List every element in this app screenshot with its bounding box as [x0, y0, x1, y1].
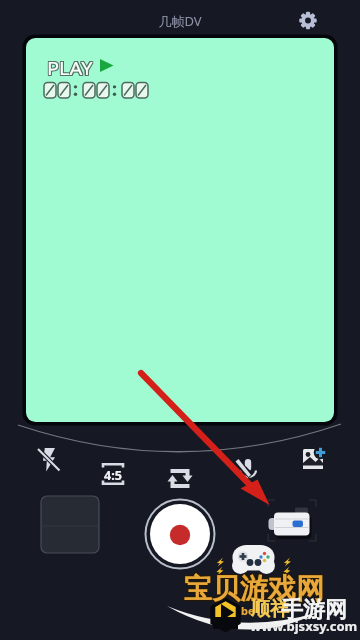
button[interactable]: Add image [295, 441, 331, 477]
staticText: PLAY [47, 54, 93, 79]
button[interactable]: Settings [292, 5, 324, 37]
staticText: 手游网 [281, 596, 347, 624]
button[interactable]: Switch camera [266, 502, 316, 540]
staticText: PLAY [46, 54, 92, 79]
staticText: PLAY [46, 56, 92, 81]
staticText: 4:5 [104, 467, 122, 481]
staticText: 宝贝游戏网 [183, 572, 323, 607]
staticText: 宝贝游戏网 [183, 571, 323, 606]
button[interactable]: Aspect ratio 4:5 [95, 456, 131, 492]
staticText: PLAY [48, 56, 94, 81]
button[interactable]: Gallery [41, 496, 99, 553]
staticText: PLAY [47, 55, 93, 80]
staticText: 宝贝游戏网 [184, 571, 324, 606]
staticText: be [241, 603, 255, 618]
staticText: 宝贝游戏网 [185, 572, 325, 607]
staticText: PLAY [48, 54, 94, 79]
staticText: 顺祥 [251, 597, 289, 621]
staticText: www.bjsxsy.com [250, 617, 358, 635]
button[interactable]: Microphone off [230, 451, 266, 487]
staticText: 宝贝游戏网 [184, 570, 324, 605]
staticText: 宝贝游戏网 [185, 570, 325, 605]
staticText: PLAY [48, 55, 94, 80]
staticText: 宝贝游戏网 [183, 570, 323, 605]
button[interactable]: Flash off [30, 443, 66, 479]
staticText: 几帧DV [158, 12, 202, 30]
staticText: PLAY [47, 56, 93, 81]
button[interactable]: Record [144, 498, 216, 570]
staticText: PLAY [46, 55, 92, 80]
button[interactable]: Loop [162, 460, 198, 496]
staticText: 宝贝游戏网 [185, 571, 325, 606]
staticText: 宝贝游戏网 [184, 572, 324, 607]
